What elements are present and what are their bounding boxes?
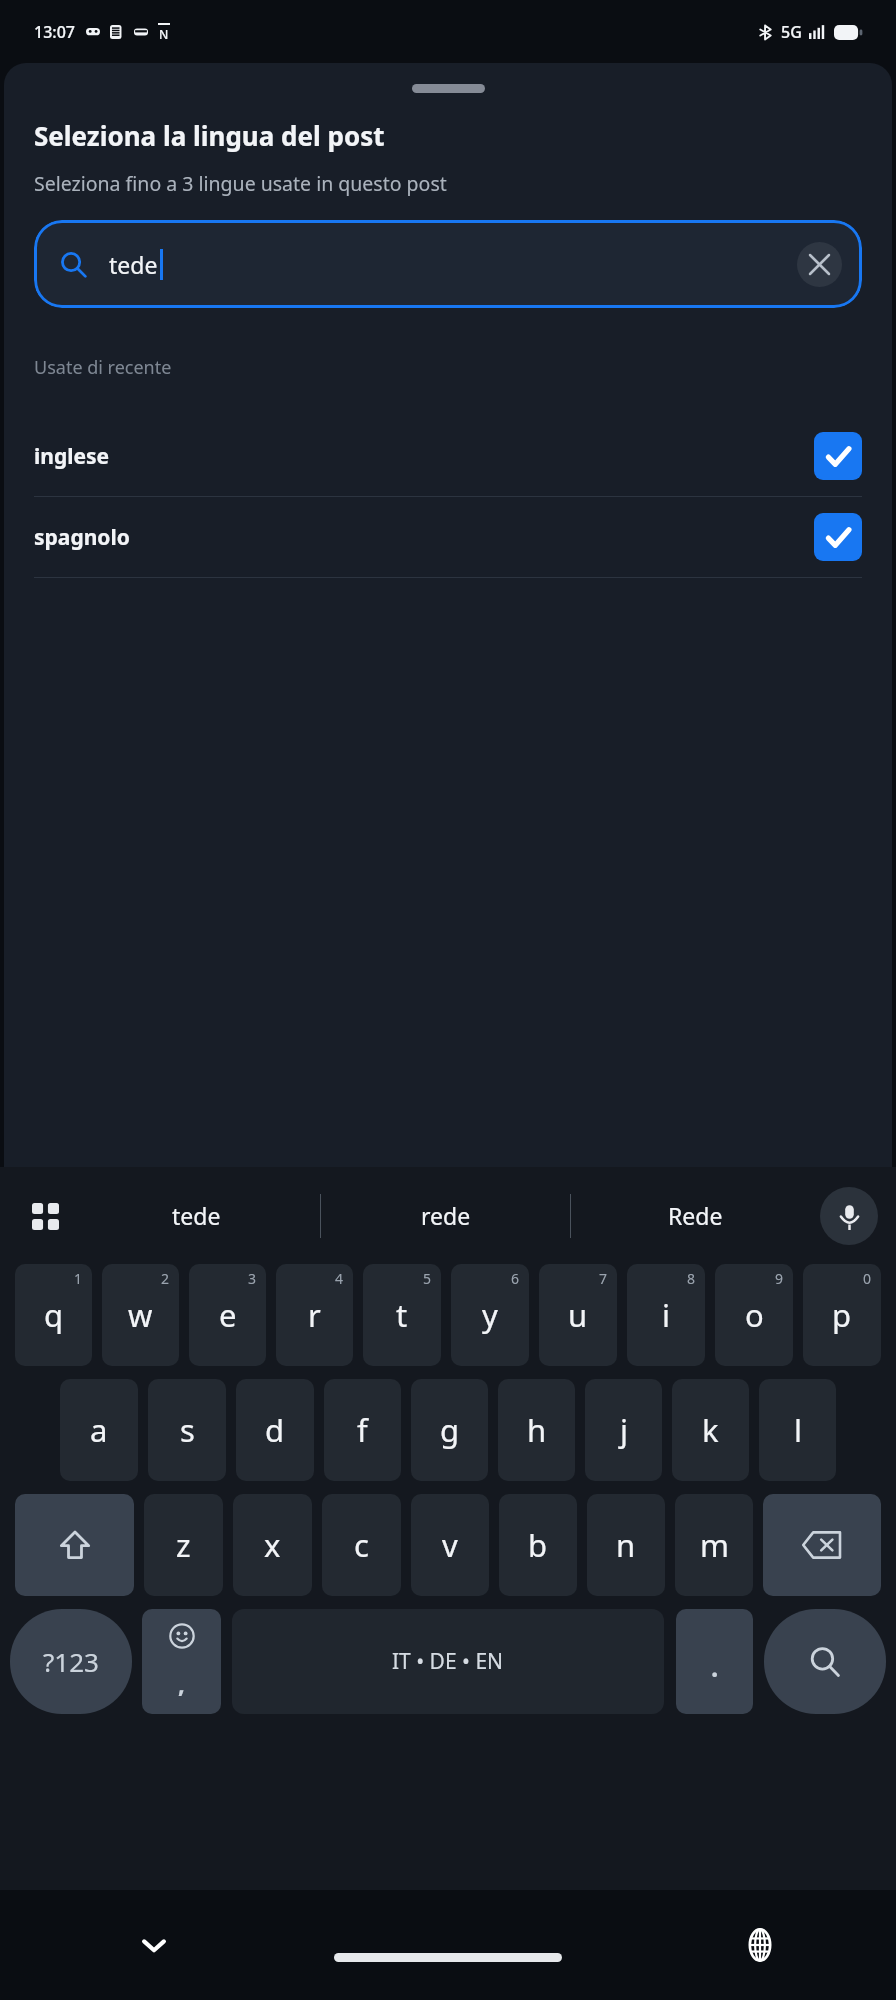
staticText: 9 <box>775 1269 784 1288</box>
staticText: q <box>44 1294 64 1336</box>
staticText: y <box>482 1294 498 1336</box>
button[interactable]: Dettatura vocale <box>820 1187 878 1245</box>
staticText: ?123 <box>43 1644 99 1679</box>
staticText: t <box>396 1294 408 1336</box>
staticText: 3 <box>248 1269 257 1288</box>
staticText: 6 <box>511 1269 520 1288</box>
button[interactable]: n <box>587 1494 665 1596</box>
staticText: v <box>442 1524 458 1566</box>
staticText: IT • DE • EN <box>392 1647 504 1676</box>
button[interactable]: Rede <box>571 1167 820 1264</box>
button[interactable]: b <box>499 1494 577 1596</box>
button[interactable]: tede <box>34 220 862 308</box>
staticText: 2 <box>161 1269 170 1288</box>
staticText: n <box>616 1524 636 1566</box>
button[interactable]: IT • DE • EN <box>232 1609 664 1714</box>
button[interactable]: Maiuscole <box>15 1494 134 1596</box>
staticText: 5G <box>781 21 802 43</box>
button[interactable]: spagnolo <box>4 497 892 577</box>
staticText: Usate di recente <box>34 355 172 380</box>
staticText: x <box>264 1524 281 1566</box>
button[interactable]: ?123 <box>10 1609 132 1714</box>
staticText: tede <box>172 1200 221 1231</box>
button[interactable]: k <box>672 1379 749 1481</box>
staticText: z <box>176 1524 191 1566</box>
button[interactable]: Cerca <box>764 1609 886 1714</box>
button[interactable]: 8 <box>627 1264 705 1366</box>
button[interactable]: . <box>676 1609 753 1714</box>
button[interactable]: d <box>236 1379 314 1481</box>
staticText: o <box>745 1294 764 1336</box>
button[interactable]: 2 <box>102 1264 179 1366</box>
staticText: s <box>180 1409 195 1451</box>
staticText: k <box>702 1409 719 1451</box>
button[interactable]: x <box>233 1494 312 1596</box>
staticText: rede <box>421 1200 471 1231</box>
button[interactable]: v <box>411 1494 489 1596</box>
button[interactable]: Strumenti <box>18 1189 72 1243</box>
staticText: i <box>662 1294 670 1336</box>
staticText: r <box>308 1294 321 1336</box>
button[interactable]: a <box>60 1379 138 1481</box>
button[interactable]: Backspace <box>763 1494 881 1596</box>
button[interactable]: Emoji <box>142 1609 221 1714</box>
button[interactable]: s <box>148 1379 226 1481</box>
staticText: 1 <box>74 1269 83 1288</box>
staticText: 13:07 <box>34 21 75 43</box>
staticText: e <box>219 1294 237 1336</box>
button[interactable]: 3 <box>189 1264 266 1366</box>
button[interactable]: rede <box>321 1167 570 1264</box>
staticText: 4 <box>335 1269 344 1288</box>
staticText: l <box>794 1409 802 1451</box>
staticText: . <box>711 1649 719 1684</box>
staticText: j <box>620 1409 628 1451</box>
button[interactable]: inglese <box>4 416 892 496</box>
button[interactable]: Cancella <box>797 242 842 287</box>
button[interactable]: m <box>675 1494 753 1596</box>
staticText: a <box>90 1409 108 1451</box>
staticText: Seleziona fino a 3 lingue usate in quest… <box>34 170 447 197</box>
staticText: g <box>440 1409 460 1451</box>
button[interactable]: 5 <box>363 1264 441 1366</box>
button[interactable]: Cambia lingua <box>724 1909 796 1981</box>
button[interactable]: 0 <box>803 1264 881 1366</box>
button[interactable]: c <box>322 1494 401 1596</box>
button[interactable]: g <box>411 1379 488 1481</box>
staticText: spagnolo <box>34 523 130 552</box>
button[interactable]: j <box>585 1379 662 1481</box>
staticText: u <box>568 1294 588 1336</box>
staticText: Rede <box>668 1200 723 1231</box>
staticText: f <box>357 1409 368 1451</box>
button[interactable]: 1 <box>15 1264 92 1366</box>
staticText: m <box>700 1524 729 1566</box>
staticText: p <box>832 1294 852 1336</box>
button[interactable]: 9 <box>715 1264 793 1366</box>
button[interactable]: f <box>324 1379 401 1481</box>
staticText: d <box>265 1409 285 1451</box>
button[interactable]: l <box>759 1379 836 1481</box>
staticText: Seleziona la lingua del post <box>34 118 385 153</box>
staticText: h <box>527 1409 547 1451</box>
staticText: inglese <box>34 442 110 471</box>
staticText: 5 <box>423 1269 432 1288</box>
button[interactable]: z <box>144 1494 223 1596</box>
staticText: c <box>354 1524 369 1566</box>
staticText: 7 <box>599 1269 608 1288</box>
staticText: tede <box>109 249 158 280</box>
button[interactable]: 4 <box>276 1264 353 1366</box>
button[interactable]: 7 <box>539 1264 617 1366</box>
button[interactable]: Nascondi tastiera <box>118 1909 190 1981</box>
button[interactable]: h <box>498 1379 575 1481</box>
staticText: N <box>159 26 169 42</box>
button[interactable]: 6 <box>451 1264 529 1366</box>
staticText: , <box>178 1667 185 1700</box>
button[interactable]: tede <box>72 1167 320 1264</box>
staticText: b <box>528 1524 548 1566</box>
staticText: w <box>128 1294 153 1336</box>
staticText: 0 <box>863 1269 872 1288</box>
staticText: 8 <box>687 1269 696 1288</box>
